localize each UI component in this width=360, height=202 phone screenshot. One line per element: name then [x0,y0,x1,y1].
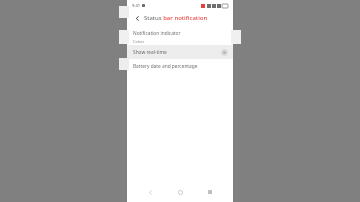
staticText: Battery date and percentage [133,63,198,70]
button[interactable]: Back [132,13,142,23]
staticText: Show real-time network speed [133,49,177,56]
button[interactable]: Recent apps [203,185,217,199]
button[interactable]: Show real-time network speed [127,45,233,59]
button[interactable]: Battery date and percentage [127,59,233,74]
staticText: 9:41 [132,3,140,8]
staticText: Colors [133,39,145,44]
staticText: Notification indicator [133,30,181,37]
button[interactable]: Back [143,185,157,199]
staticText: Status bar notification [144,14,208,22]
button[interactable]: Home [173,185,187,199]
button[interactable]: Notification indicator [127,28,233,45]
button[interactable]: Toggle real-time network speed [221,49,228,56]
